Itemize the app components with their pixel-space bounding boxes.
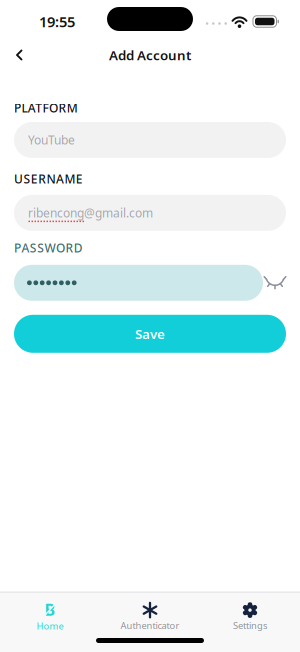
staticText: Authenticator (120, 619, 179, 631)
button[interactable]: Authenticator (100, 593, 200, 631)
button[interactable]: Username (14, 195, 286, 231)
staticText: Add Account (109, 46, 191, 64)
staticText: Save (135, 325, 165, 343)
button[interactable]: Platform (14, 122, 286, 158)
staticText: YouTube (28, 132, 75, 148)
staticText: PLATFORM (14, 100, 78, 116)
staticText: PASSWORD (14, 240, 83, 256)
button[interactable]: Password (14, 265, 263, 301)
button[interactable]: B (0, 593, 100, 632)
button[interactable]: Save (14, 315, 286, 353)
staticText: B (44, 599, 55, 620)
button[interactable]: Back (0, 44, 30, 66)
staticText: ribencong@gmail.com (28, 205, 153, 221)
staticText: Home (36, 620, 63, 632)
staticText: USERNAME (14, 171, 83, 187)
button[interactable]: Show password (264, 274, 286, 291)
button[interactable]: Settings (200, 593, 300, 631)
staticText: Settings (233, 619, 267, 631)
staticText: 19:55 (39, 12, 75, 31)
